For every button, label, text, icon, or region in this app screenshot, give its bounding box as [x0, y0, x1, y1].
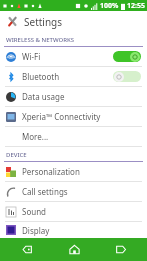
button[interactable]: Xperia™ Connectivity — [0, 107, 147, 127]
staticText: More... — [22, 131, 141, 142]
staticText: Settings — [24, 15, 63, 29]
staticText: Sound — [22, 206, 141, 217]
button[interactable]: Recents — [100, 238, 140, 261]
button[interactable]: Off — [113, 71, 141, 82]
button[interactable]: Settings — [0, 11, 147, 32]
staticText: 12:55 — [127, 1, 145, 11]
staticText: WIRELESS & NETWORKS — [6, 36, 75, 44]
staticText: Call settings — [22, 186, 141, 197]
button[interactable]: Bluetooth — [0, 67, 147, 87]
staticText: Data usage — [22, 91, 141, 102]
staticText: 100% — [100, 1, 119, 11]
staticText: Personalization — [22, 166, 141, 177]
staticText: DEVICE — [6, 151, 27, 159]
button[interactable]: Personalization — [0, 162, 147, 182]
button[interactable]: Back — [7, 238, 47, 261]
button[interactable]: Sound — [0, 202, 147, 222]
button[interactable]: Call settings — [0, 182, 147, 202]
staticText: Display — [22, 225, 141, 236]
button[interactable]: On — [113, 51, 141, 62]
button[interactable]: Home — [54, 238, 94, 261]
staticText: Xperia™ Connectivity — [22, 111, 141, 122]
button[interactable]: Wi-Fi — [0, 47, 147, 67]
staticText: Bluetooth — [22, 71, 113, 82]
button[interactable]: Data usage — [0, 87, 147, 107]
button[interactable]: More... — [0, 127, 147, 147]
staticText: Wi-Fi — [22, 51, 113, 62]
button[interactable]: Display — [0, 222, 147, 238]
